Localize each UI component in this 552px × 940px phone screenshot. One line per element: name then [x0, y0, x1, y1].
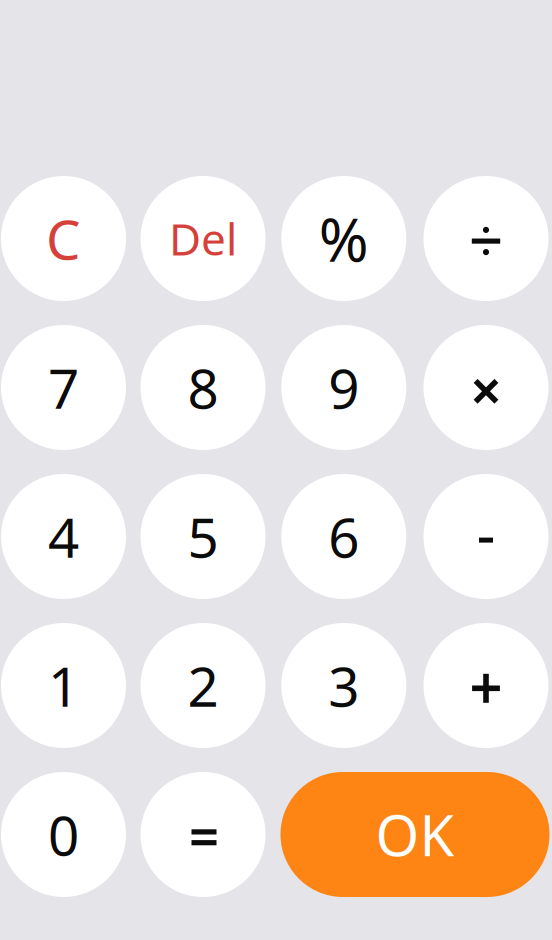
button[interactable]: Equals	[140, 772, 265, 897]
staticText: 0	[48, 798, 79, 871]
button[interactable]: 1	[1, 623, 126, 748]
button[interactable]: Del	[140, 176, 265, 301]
button[interactable]: Multiply	[423, 325, 548, 450]
button[interactable]: 4	[1, 474, 126, 599]
staticText: 9	[328, 351, 359, 424]
staticText: %	[319, 199, 369, 278]
button[interactable]: 6	[281, 474, 406, 599]
staticText: Del	[169, 209, 237, 268]
button[interactable]: 9	[281, 325, 406, 450]
button[interactable]: Minus	[423, 474, 548, 599]
staticText: 8	[187, 351, 218, 424]
staticText: 1	[48, 649, 79, 722]
staticText: 4	[48, 500, 79, 573]
button[interactable]: 5	[140, 474, 265, 599]
button[interactable]: Plus	[423, 623, 548, 748]
button[interactable]: 2	[140, 623, 265, 748]
staticText: 5	[187, 500, 218, 573]
staticText: 2	[187, 649, 218, 722]
staticText: 6	[328, 500, 359, 573]
button[interactable]: 8	[140, 325, 265, 450]
staticText: 3	[328, 649, 359, 722]
button[interactable]: %	[281, 176, 406, 301]
button[interactable]: 3	[281, 623, 406, 748]
staticText: C	[46, 202, 81, 275]
button[interactable]: 0	[1, 772, 126, 897]
button[interactable]: Divide	[423, 176, 548, 301]
staticText: OK	[375, 797, 454, 872]
button[interactable]: OK	[280, 772, 549, 897]
staticText: 7	[48, 351, 79, 424]
button[interactable]: 7	[1, 325, 126, 450]
button[interactable]: C	[1, 176, 126, 301]
